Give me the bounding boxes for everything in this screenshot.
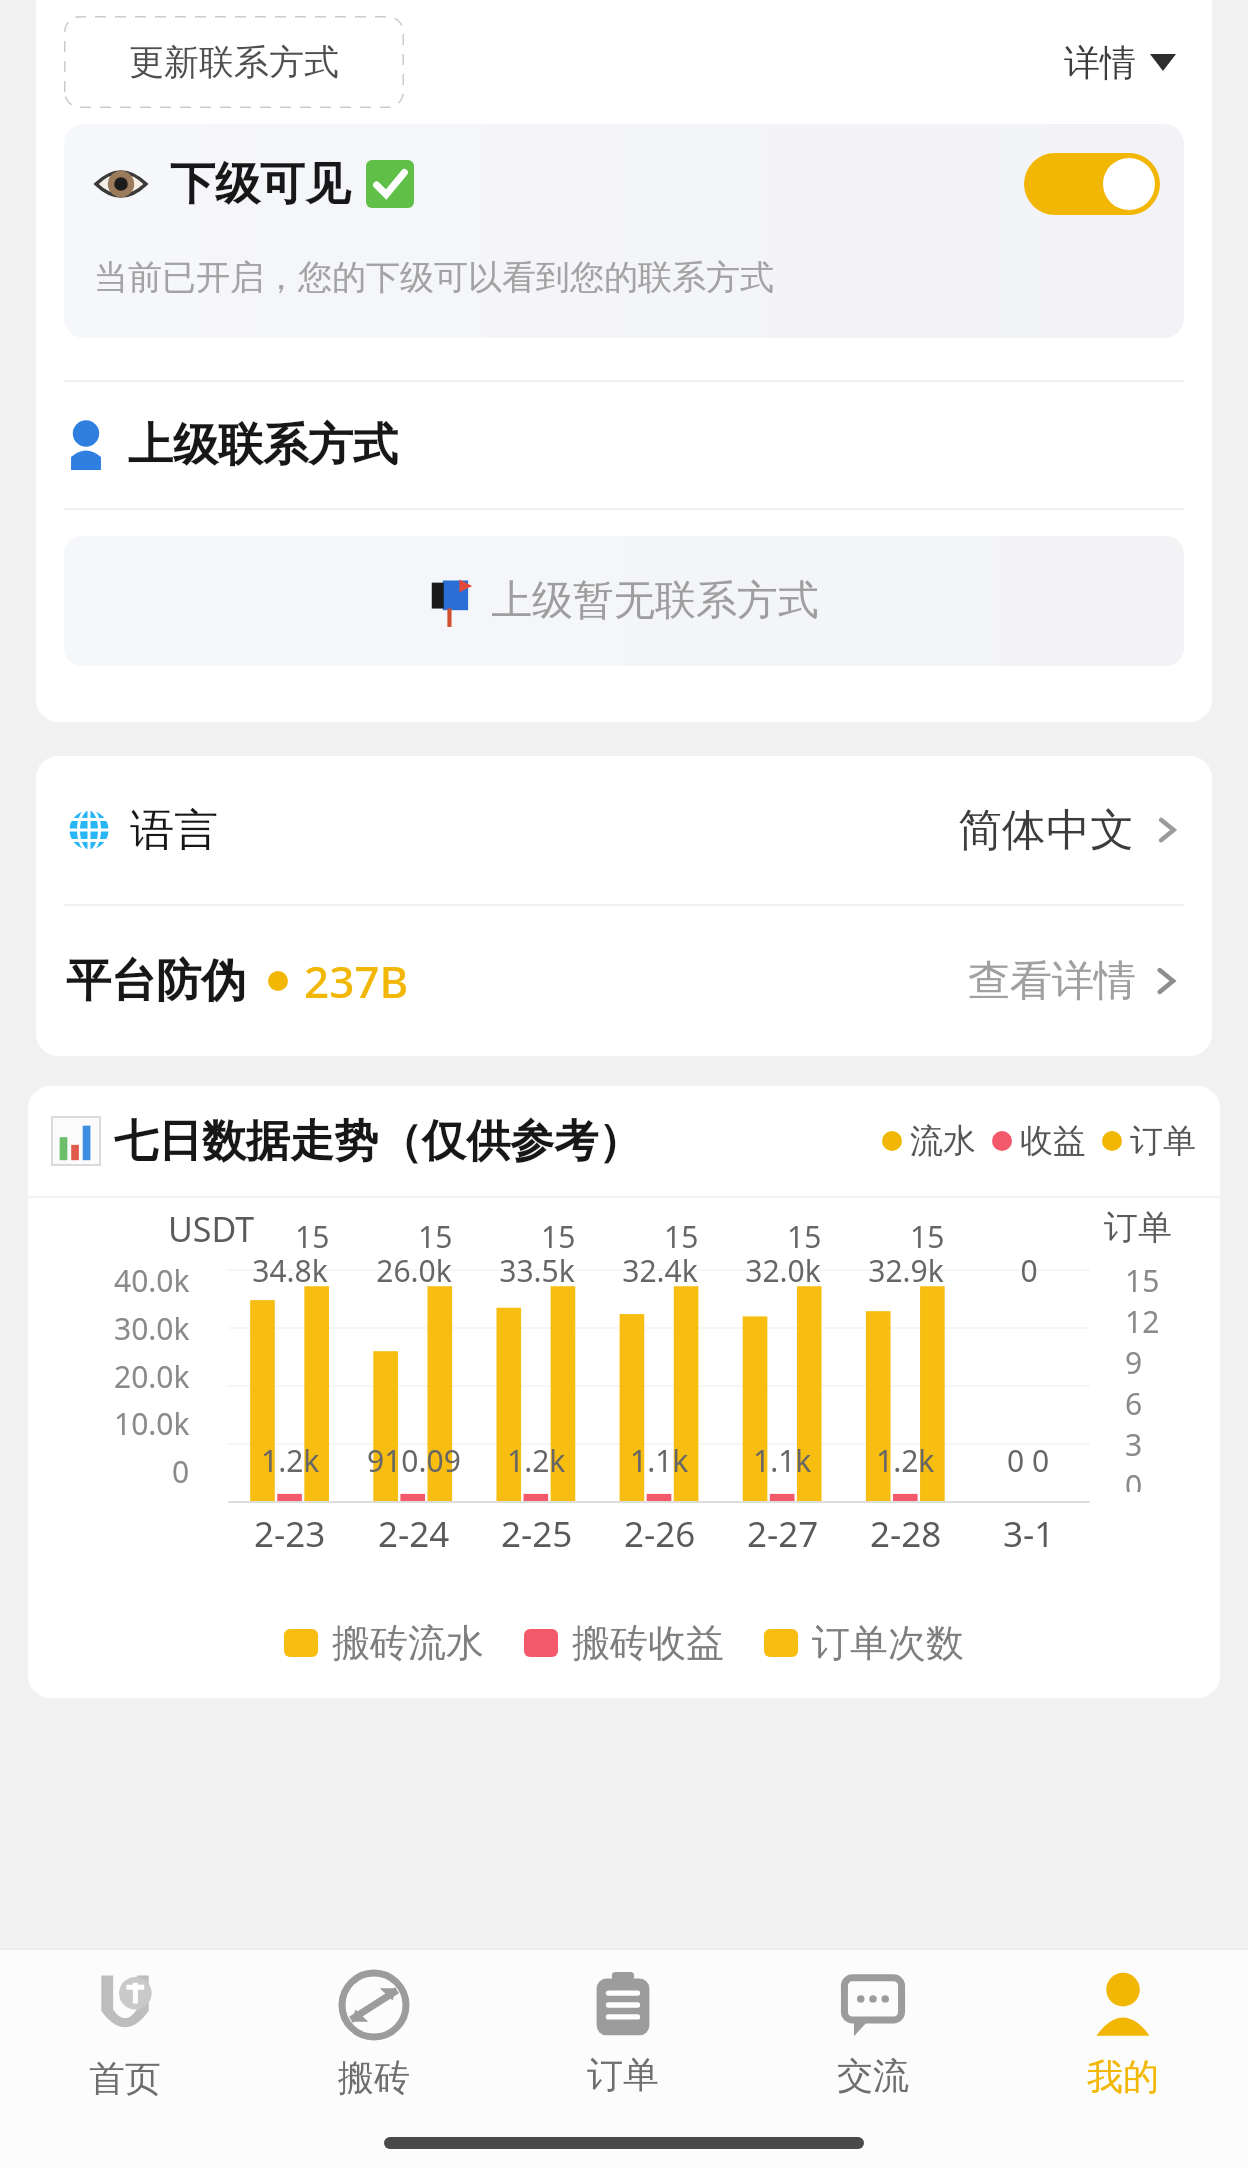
button[interactable]: 搬砖: [249, 1950, 498, 2118]
button[interactable]: 我的: [998, 1950, 1248, 2118]
button[interactable]: 详情: [1056, 28, 1184, 97]
staticText: 0: [1125, 1465, 1143, 1492]
staticText: 语言: [130, 803, 218, 858]
staticText: 2-23: [254, 1510, 326, 1558]
staticText: 交流: [837, 2053, 909, 2098]
button[interactable]: 首页: [0, 1950, 249, 2118]
staticText: 15: [787, 1216, 822, 1257]
button[interactable]: 下级可见: [64, 124, 1184, 338]
staticText: 查看详情: [968, 955, 1136, 1008]
staticText: 订单次数: [812, 1619, 964, 1667]
staticText: USDT: [168, 1206, 255, 1252]
staticText: 2-25: [501, 1510, 573, 1558]
staticText: 搬砖流水: [332, 1619, 484, 1667]
staticText: 32.0k: [745, 1250, 821, 1291]
staticText: 2-27: [747, 1510, 819, 1558]
staticText: 33.5k: [499, 1250, 575, 1291]
staticText: 2-28: [870, 1510, 942, 1558]
staticText: 32.4k: [622, 1250, 698, 1291]
staticText: 15: [664, 1216, 699, 1257]
staticText: 20.0k: [114, 1356, 190, 1397]
staticText: 七日数据走势（仅供参考）: [114, 1114, 642, 1169]
staticText: 下级可见: [170, 156, 350, 213]
staticText: 15: [910, 1216, 945, 1257]
staticText: 1.2k: [876, 1440, 935, 1481]
staticText: 0: [172, 1451, 190, 1492]
staticText: 15: [541, 1216, 576, 1257]
button[interactable]: 下级可见开关: [1024, 153, 1160, 215]
staticText: 简体中文: [958, 803, 1134, 858]
staticText: 0: [1020, 1250, 1038, 1291]
staticText: 9: [1125, 1342, 1143, 1383]
button[interactable]: 平台防伪: [36, 906, 1212, 1056]
staticText: 1.1k: [630, 1440, 689, 1481]
staticText: 12: [1125, 1301, 1160, 1342]
staticText: 15: [295, 1216, 330, 1257]
staticText: 15: [1125, 1260, 1160, 1301]
staticText: 2-26: [624, 1510, 696, 1558]
staticText: 3: [1125, 1424, 1143, 1465]
staticText: 32.9k: [868, 1250, 944, 1291]
staticText: 更新联系方式: [129, 40, 339, 84]
staticText: 订单: [587, 2052, 659, 2097]
staticText: 10.0k: [114, 1403, 190, 1444]
staticText: 平台防伪: [66, 953, 246, 1010]
staticText: 30.0k: [114, 1308, 190, 1349]
button[interactable]: 语言: [36, 756, 1212, 904]
button[interactable]: 交流: [748, 1950, 998, 2118]
staticText: 订单: [1130, 1120, 1196, 1162]
staticText: 34.8k: [252, 1250, 328, 1291]
button[interactable]: 更新联系方式: [64, 16, 404, 108]
staticText: 1.2k: [507, 1440, 566, 1481]
staticText: 搬砖收益: [572, 1619, 724, 1667]
staticText: 2-24: [378, 1510, 450, 1558]
staticText: 1.2k: [261, 1440, 320, 1481]
staticText: 40.0k: [114, 1260, 190, 1301]
button[interactable]: 订单: [498, 1950, 748, 2118]
staticText: 237B: [304, 951, 409, 1011]
staticText: 当前已开启，您的下级可以看到您的联系方式: [94, 256, 774, 299]
staticText: 详情: [1064, 40, 1136, 85]
staticText: 流水: [910, 1120, 976, 1162]
staticText: 我的: [1087, 2054, 1159, 2099]
staticText: 15: [418, 1216, 453, 1257]
staticText: 首页: [89, 2056, 161, 2101]
button[interactable]: 上级暂无联系方式: [64, 536, 1184, 666]
staticText: 26.0k: [376, 1250, 452, 1291]
staticText: 3-1: [1003, 1510, 1055, 1558]
staticText: 上级暂无联系方式: [491, 575, 819, 627]
staticText: 1.1k: [753, 1440, 812, 1481]
staticText: 910.09: [367, 1440, 461, 1481]
staticText: 订单: [1104, 1206, 1172, 1249]
staticText: 6: [1125, 1383, 1143, 1424]
staticText: 0 0: [1007, 1440, 1050, 1481]
staticText: 上级联系方式: [128, 417, 398, 474]
staticText: 搬砖: [338, 2055, 410, 2100]
staticText: 收益: [1020, 1120, 1086, 1162]
